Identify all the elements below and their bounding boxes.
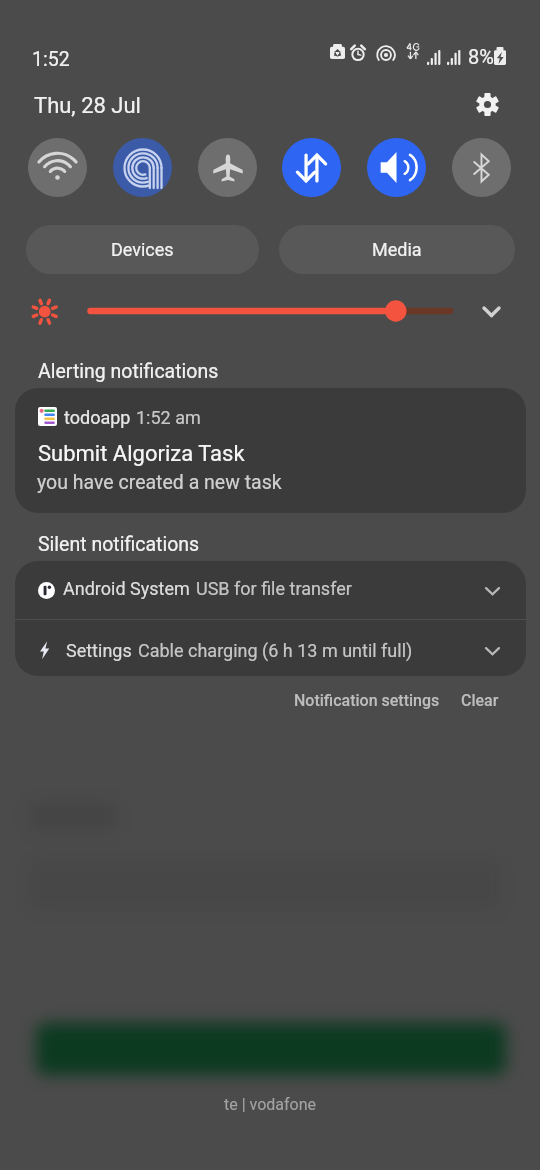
staticText: 1:52 am bbox=[136, 407, 201, 428]
staticText: Clear bbox=[461, 691, 499, 710]
staticText: Devices bbox=[111, 239, 174, 260]
staticText: Settings bbox=[66, 640, 132, 661]
button[interactable]: Mobile data bbox=[282, 138, 341, 197]
button[interactable]: Sound bbox=[367, 138, 426, 197]
staticText: Submit Algoriza Task bbox=[38, 441, 245, 467]
staticText: Notification settings bbox=[294, 691, 440, 710]
staticText: 1:52 bbox=[32, 48, 70, 71]
staticText: Media bbox=[372, 239, 422, 260]
staticText: Android System bbox=[63, 578, 190, 599]
button[interactable]: Clear bbox=[452, 685, 507, 715]
button[interactable]: Expand brightness bbox=[470, 292, 508, 330]
button[interactable]: Notification settings bbox=[287, 685, 447, 715]
button[interactable]: Bluetooth bbox=[452, 138, 511, 197]
staticText: Alerting notifications bbox=[38, 360, 219, 383]
button[interactable] bbox=[15, 388, 526, 513]
staticText: Thu, 28 Jul bbox=[34, 93, 141, 119]
staticText: Silent notifications bbox=[38, 533, 200, 556]
staticText: te | vodafone bbox=[224, 1095, 317, 1114]
button[interactable] bbox=[15, 561, 526, 619]
button[interactable]: Airplane mode bbox=[198, 138, 257, 197]
button[interactable]: Settings bbox=[469, 86, 505, 122]
button[interactable]: Brightness bbox=[80, 292, 460, 330]
button[interactable]: Wi-Fi bbox=[28, 138, 87, 197]
staticText: Cable charging (6 h 13 m until full) bbox=[138, 640, 413, 661]
staticText: USB for file transfer bbox=[196, 578, 352, 599]
staticText: you have created a new task bbox=[37, 471, 282, 494]
button[interactable]: Media bbox=[279, 225, 515, 274]
button[interactable]: Devices bbox=[26, 225, 259, 274]
staticText: todoapp bbox=[64, 407, 131, 428]
button[interactable] bbox=[15, 619, 526, 676]
button[interactable]: Internet bbox=[113, 138, 172, 197]
staticText: 8% bbox=[468, 45, 494, 68]
